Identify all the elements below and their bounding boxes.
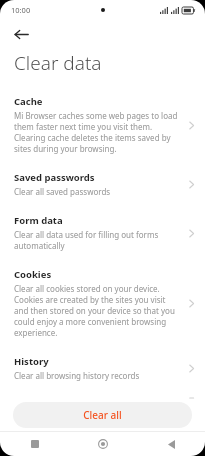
staticText: Mi Browser caches some web pages to load… xyxy=(14,110,179,154)
staticText: Cookies xyxy=(14,268,52,281)
staticText: Clear data xyxy=(14,50,102,76)
button[interactable]: Recents xyxy=(0,432,69,456)
staticText: Clear all data used for filling out form… xyxy=(14,229,179,251)
staticText: Cache xyxy=(14,95,43,108)
button[interactable]: History xyxy=(0,352,205,395)
button[interactable]: Cache xyxy=(0,92,205,168)
staticText: 10:00 xyxy=(11,5,31,15)
staticText: History xyxy=(14,355,49,368)
staticText: Clear all xyxy=(83,408,122,422)
button[interactable]: Back xyxy=(8,21,34,47)
staticText: Clear all browsing history records xyxy=(14,370,140,381)
staticText: Clear all saved passwords xyxy=(14,186,111,197)
staticText: Saved passwords xyxy=(14,171,95,184)
button[interactable]: Form data xyxy=(0,211,205,265)
staticText: Clear all cookies stored on your device.… xyxy=(14,283,179,338)
button[interactable]: Back xyxy=(137,432,205,456)
button[interactable]: Saved passwords xyxy=(0,168,205,211)
button[interactable]: Cookies xyxy=(0,265,205,352)
staticText: Form data xyxy=(14,214,63,227)
button[interactable]: Clear all xyxy=(13,402,192,428)
button[interactable]: Home xyxy=(69,432,137,456)
